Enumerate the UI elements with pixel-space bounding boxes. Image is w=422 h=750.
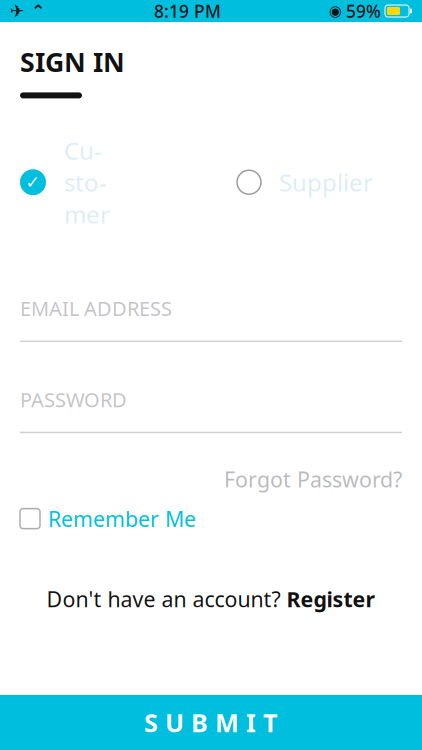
staticText: Register (286, 585, 375, 613)
button[interactable]: Don't have an account? (20, 579, 402, 619)
button[interactable]: ✓ (20, 134, 128, 230)
staticText: ◉ (329, 3, 342, 19)
staticText: Customer (64, 134, 110, 230)
staticText: Forgot Password? (224, 465, 402, 493)
staticText: 59% (346, 0, 381, 22)
staticText: 8:19 PM (154, 0, 221, 22)
staticText: ✈ (10, 1, 25, 21)
button[interactable]: Supplier (237, 166, 402, 198)
button[interactable]: Remember Me (20, 502, 402, 535)
staticText: Supplier (279, 166, 373, 198)
staticText: Don't have an account? (46, 585, 286, 613)
staticText: S U B M I T (144, 706, 278, 739)
staticText: SIGN IN (20, 44, 125, 79)
button[interactable]: S U B M I T (0, 695, 422, 750)
staticText: ✓ (25, 172, 40, 192)
staticText: ⌃ (31, 1, 46, 21)
staticText: EMAIL ADDRESS (20, 295, 172, 322)
staticText: Remember Me (48, 504, 196, 533)
button[interactable]: Forgot Password? (20, 461, 402, 497)
staticText: PASSWORD (20, 386, 127, 413)
